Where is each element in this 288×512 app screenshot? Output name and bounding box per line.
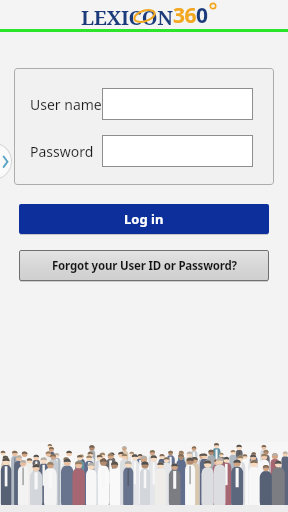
- button[interactable]: [102, 135, 253, 167]
- staticText: Forgot your User ID or Password?: [52, 258, 237, 274]
- staticText: 360: [173, 1, 208, 30]
- staticText: LEXICON: [81, 4, 173, 31]
- button[interactable]: [0, 141, 16, 181]
- staticText: Password: [30, 142, 94, 161]
- button[interactable]: [102, 88, 253, 120]
- button[interactable]: Log in: [19, 204, 269, 234]
- staticText: User name: [30, 95, 102, 114]
- staticText: Log in: [124, 210, 164, 228]
- button[interactable]: Forgot your User ID or Password?: [19, 250, 269, 281]
